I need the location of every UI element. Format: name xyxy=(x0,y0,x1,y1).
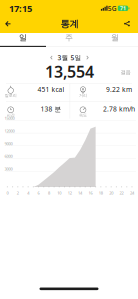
staticText: 4 xyxy=(27,190,29,196)
staticText: 3000 xyxy=(4,166,12,172)
staticText: 거리 xyxy=(79,93,87,98)
staticText: 13,554 xyxy=(45,61,94,82)
button[interactable]: 공유 xyxy=(118,15,135,32)
staticText: 15000 xyxy=(4,115,14,121)
staticText: 걸음 xyxy=(120,69,130,75)
staticText: 3월 5일 xyxy=(57,53,81,62)
staticText: 8 xyxy=(48,190,50,196)
staticText: 속도 xyxy=(79,113,87,117)
staticText: 12 xyxy=(68,190,72,196)
button[interactable]: 뒤로 xyxy=(0,15,16,32)
staticText: 451 kcal xyxy=(37,85,64,94)
staticText: 71 xyxy=(120,5,126,12)
staticText: 칼로리 xyxy=(5,93,17,98)
staticText: 2.78 km/h xyxy=(103,104,135,113)
button[interactable]: 거리 xyxy=(70,83,136,101)
staticText: 18 xyxy=(99,190,103,196)
staticText: 16 xyxy=(88,190,92,196)
staticText: 5G xyxy=(108,4,117,13)
staticText: 0 xyxy=(6,190,8,196)
staticText: 12000 xyxy=(4,128,14,133)
button[interactable]: 다음 xyxy=(82,52,93,63)
staticText: 시간 xyxy=(7,113,15,117)
button[interactable]: 월 xyxy=(92,33,138,47)
staticText: 22 xyxy=(120,190,124,196)
button[interactable]: 시간 xyxy=(2,103,68,121)
staticText: 주 xyxy=(65,33,73,42)
staticText: 6 xyxy=(37,190,39,196)
button[interactable]: 이전 xyxy=(46,52,57,63)
staticText: 138 분 xyxy=(40,104,61,113)
staticText: 6000 xyxy=(4,154,12,159)
staticText: 20 xyxy=(109,190,113,196)
staticText: 통계 xyxy=(60,18,78,30)
staticText: 월 xyxy=(111,33,119,42)
staticText: 10 xyxy=(57,190,61,196)
button[interactable]: 일 xyxy=(0,33,46,47)
staticText: 9000 xyxy=(4,141,12,146)
staticText: 일 xyxy=(19,33,27,42)
staticText: 24 xyxy=(130,190,134,196)
button[interactable]: 속도 xyxy=(70,103,136,121)
staticText: 17:15 xyxy=(9,2,32,14)
staticText: 14 xyxy=(78,190,82,196)
staticText: 9.22 km xyxy=(106,85,132,94)
button[interactable]: 칼로리 xyxy=(2,83,68,101)
staticText: 2 xyxy=(17,190,19,196)
button[interactable]: 주 xyxy=(46,33,92,47)
